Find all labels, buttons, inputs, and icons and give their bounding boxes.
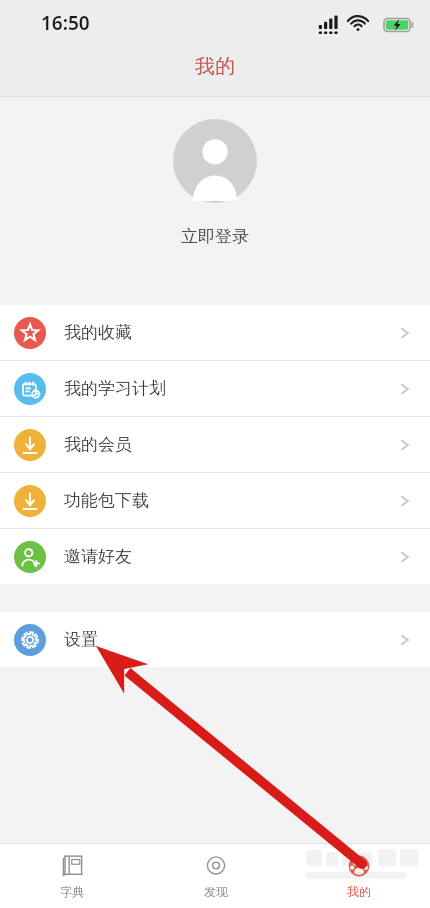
button[interactable]: 我的收藏	[0, 305, 430, 360]
staticText: 设置	[64, 629, 98, 650]
button[interactable]: 我的学习计划	[0, 361, 430, 416]
staticText: 我的会员	[64, 434, 132, 455]
button[interactable]: 立即登录	[167, 223, 263, 250]
staticText: 发现	[204, 884, 228, 899]
button[interactable]: 设置	[0, 612, 430, 667]
button[interactable]: Avatar	[173, 119, 257, 203]
button[interactable]: 我的会员	[0, 417, 430, 472]
staticText: 我的	[347, 884, 371, 899]
staticText: 立即登录	[181, 226, 249, 247]
staticText: 16:50	[41, 10, 90, 36]
staticText: 字典	[60, 884, 84, 899]
button[interactable]: 我的	[287, 844, 430, 908]
button[interactable]: 发现	[144, 844, 287, 908]
button[interactable]: 邀请好友	[0, 529, 430, 584]
button[interactable]: 字典	[0, 844, 144, 908]
staticText: 我的	[195, 54, 235, 79]
staticText: 邀请好友	[64, 546, 132, 567]
button[interactable]: 功能包下载	[0, 473, 430, 528]
staticText: 功能包下载	[64, 490, 149, 511]
staticText: 我的收藏	[64, 322, 132, 343]
staticText: 我的学习计划	[64, 378, 166, 399]
